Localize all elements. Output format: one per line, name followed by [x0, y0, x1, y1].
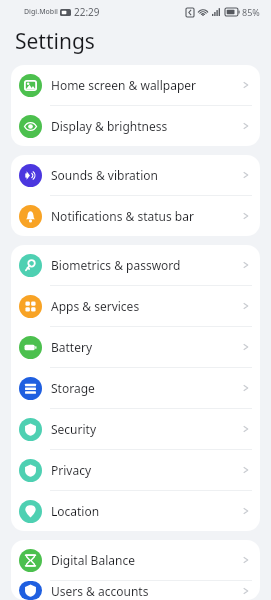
other: Sounds & vibration: [19, 164, 42, 187]
staticText: Users & accounts: [51, 583, 149, 599]
button[interactable]: Home screen & wallpaper: [11, 65, 260, 105]
other: Home screen & wallpaper: [19, 74, 42, 97]
other: Biometrics & password: [19, 254, 42, 277]
staticText: Apps & services: [51, 298, 140, 314]
button[interactable]: Privacy: [11, 450, 260, 490]
staticText: Digital Balance: [51, 552, 135, 568]
staticText: 22:29: [74, 5, 100, 19]
button[interactable]: Storage: [11, 368, 260, 408]
other: Users & accounts: [19, 581, 42, 600]
staticText: Display & brightness: [51, 118, 168, 134]
staticText: Location: [51, 503, 100, 519]
other: Digital Balance: [19, 549, 42, 572]
button[interactable]: Battery: [11, 327, 260, 367]
staticText: Settings: [15, 27, 95, 56]
staticText: Security: [51, 421, 97, 437]
button[interactable]: Notifications & status bar: [11, 196, 260, 236]
staticText: Notifications & status bar: [51, 208, 194, 224]
button[interactable]: Users & accounts: [11, 581, 260, 600]
button[interactable]: Digital Balance: [11, 540, 260, 580]
button[interactable]: Biometrics & password: [11, 245, 260, 285]
other: Apps & services: [19, 295, 42, 318]
staticText: Sounds & vibration: [51, 167, 158, 183]
staticText: Home screen & wallpaper: [51, 77, 197, 93]
button[interactable]: Apps & services: [11, 286, 260, 326]
button[interactable]: Location: [11, 491, 260, 531]
other: Notifications & status bar: [19, 205, 42, 228]
staticText: Privacy: [51, 462, 92, 478]
staticText: Digi.Mobil: [24, 7, 58, 17]
staticText: Battery: [51, 339, 93, 355]
other: Security: [19, 418, 42, 441]
staticText: 85%: [242, 6, 260, 18]
button[interactable]: Display & brightness: [11, 106, 260, 146]
other: Display & brightness: [19, 115, 42, 138]
button[interactable]: Sounds & vibration: [11, 155, 260, 195]
staticText: Biometrics & password: [51, 257, 181, 273]
other: Location: [19, 500, 42, 523]
staticText: Storage: [51, 380, 95, 396]
other: Battery: [19, 336, 42, 359]
button[interactable]: Security: [11, 409, 260, 449]
other: Privacy: [19, 459, 42, 482]
other: Storage: [19, 377, 42, 400]
